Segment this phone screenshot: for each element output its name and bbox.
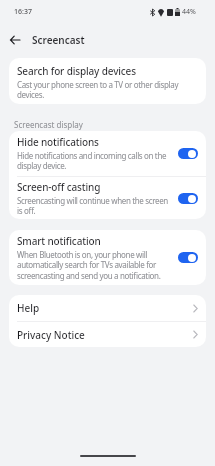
staticText: Screencast display	[14, 119, 83, 130]
staticText: Screen-off casting	[17, 180, 101, 194]
staticText: 16:37	[14, 7, 32, 17]
staticText: Smart notification	[17, 234, 101, 248]
staticText: Help	[17, 301, 193, 315]
staticText: Screencasting will continue when the scr…	[17, 195, 168, 217]
button[interactable]: Screen-off casting	[9, 177, 206, 219]
button[interactable]	[178, 252, 198, 263]
button[interactable]: Hide notifications	[9, 131, 206, 176]
staticText: Search for display devices	[17, 64, 136, 78]
staticText: When Bluetooth is on, your phone will au…	[17, 249, 161, 282]
staticText: Cast your phone screen to a TV or other …	[17, 79, 179, 101]
button[interactable]	[178, 148, 198, 159]
button[interactable]	[10, 35, 20, 45]
staticText: 44%	[182, 7, 196, 17]
button[interactable]: Search for display devices	[9, 58, 206, 101]
staticText: Hide notifications	[17, 135, 99, 149]
button[interactable]: Smart notification	[9, 230, 206, 285]
button[interactable]: Privacy Notice	[9, 322, 206, 347]
button[interactable]: Help	[9, 295, 206, 321]
staticText: Screencast	[32, 33, 85, 47]
button[interactable]	[178, 193, 198, 204]
staticText: Privacy Notice	[17, 328, 193, 342]
staticText: Hide notifications and incoming calls on…	[17, 150, 167, 172]
